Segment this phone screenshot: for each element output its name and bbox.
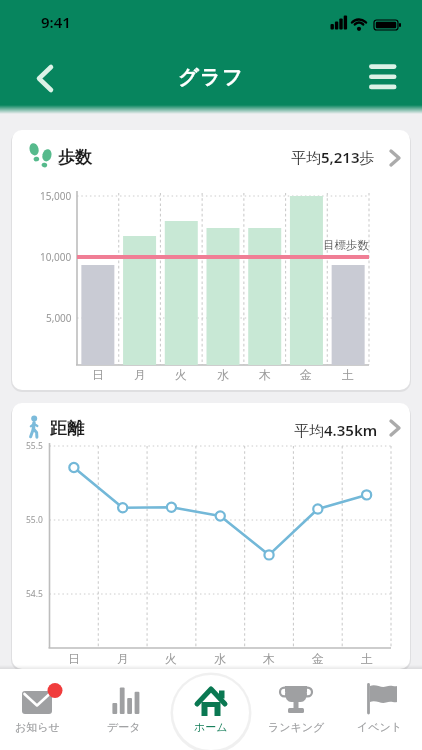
staticText: 55.5 xyxy=(26,440,43,452)
button[interactable] xyxy=(337,669,422,750)
staticText: 日 xyxy=(92,367,104,382)
staticText: 火 xyxy=(165,651,177,666)
staticText: グラフ xyxy=(178,65,244,90)
staticText: 木 xyxy=(263,651,275,666)
staticText: 土 xyxy=(342,367,354,382)
button[interactable]: 距離 xyxy=(12,403,410,669)
staticText: 木 xyxy=(259,367,271,382)
staticText: 15,000 xyxy=(40,189,72,203)
staticText: 金 xyxy=(312,651,324,666)
staticText: 金 xyxy=(300,367,312,382)
staticText: 目標歩数 xyxy=(323,238,369,252)
staticText: 水 xyxy=(214,651,226,666)
button[interactable] xyxy=(24,58,64,98)
staticText: お知らせ xyxy=(15,720,60,734)
staticText: 平均5,213歩 xyxy=(291,147,375,167)
button[interactable] xyxy=(0,669,84,750)
staticText: 54.5 xyxy=(26,588,43,600)
staticText: 歩数 xyxy=(58,147,92,168)
staticText: データ xyxy=(107,720,141,734)
staticText: 距離 xyxy=(50,418,84,439)
staticText: 9:41 xyxy=(41,12,71,32)
staticText: 55.0 xyxy=(26,514,43,526)
staticText: ホーム xyxy=(194,720,228,734)
staticText: 月 xyxy=(134,367,146,382)
staticText: 平均4.35km xyxy=(294,420,378,440)
staticText: イベント xyxy=(357,720,403,734)
button[interactable]: 歩数 xyxy=(12,130,410,390)
staticText: 月 xyxy=(117,651,129,666)
staticText: 火 xyxy=(175,367,187,382)
button[interactable] xyxy=(362,57,404,97)
staticText: 10,000 xyxy=(40,250,72,264)
button[interactable] xyxy=(84,669,168,750)
button[interactable] xyxy=(253,669,337,750)
staticText: 土 xyxy=(361,651,373,666)
staticText: ランキング xyxy=(268,720,325,734)
staticText: 日 xyxy=(68,651,80,666)
staticText: 5,000 xyxy=(46,311,72,325)
button[interactable] xyxy=(173,675,249,750)
staticText: 水 xyxy=(217,367,229,382)
